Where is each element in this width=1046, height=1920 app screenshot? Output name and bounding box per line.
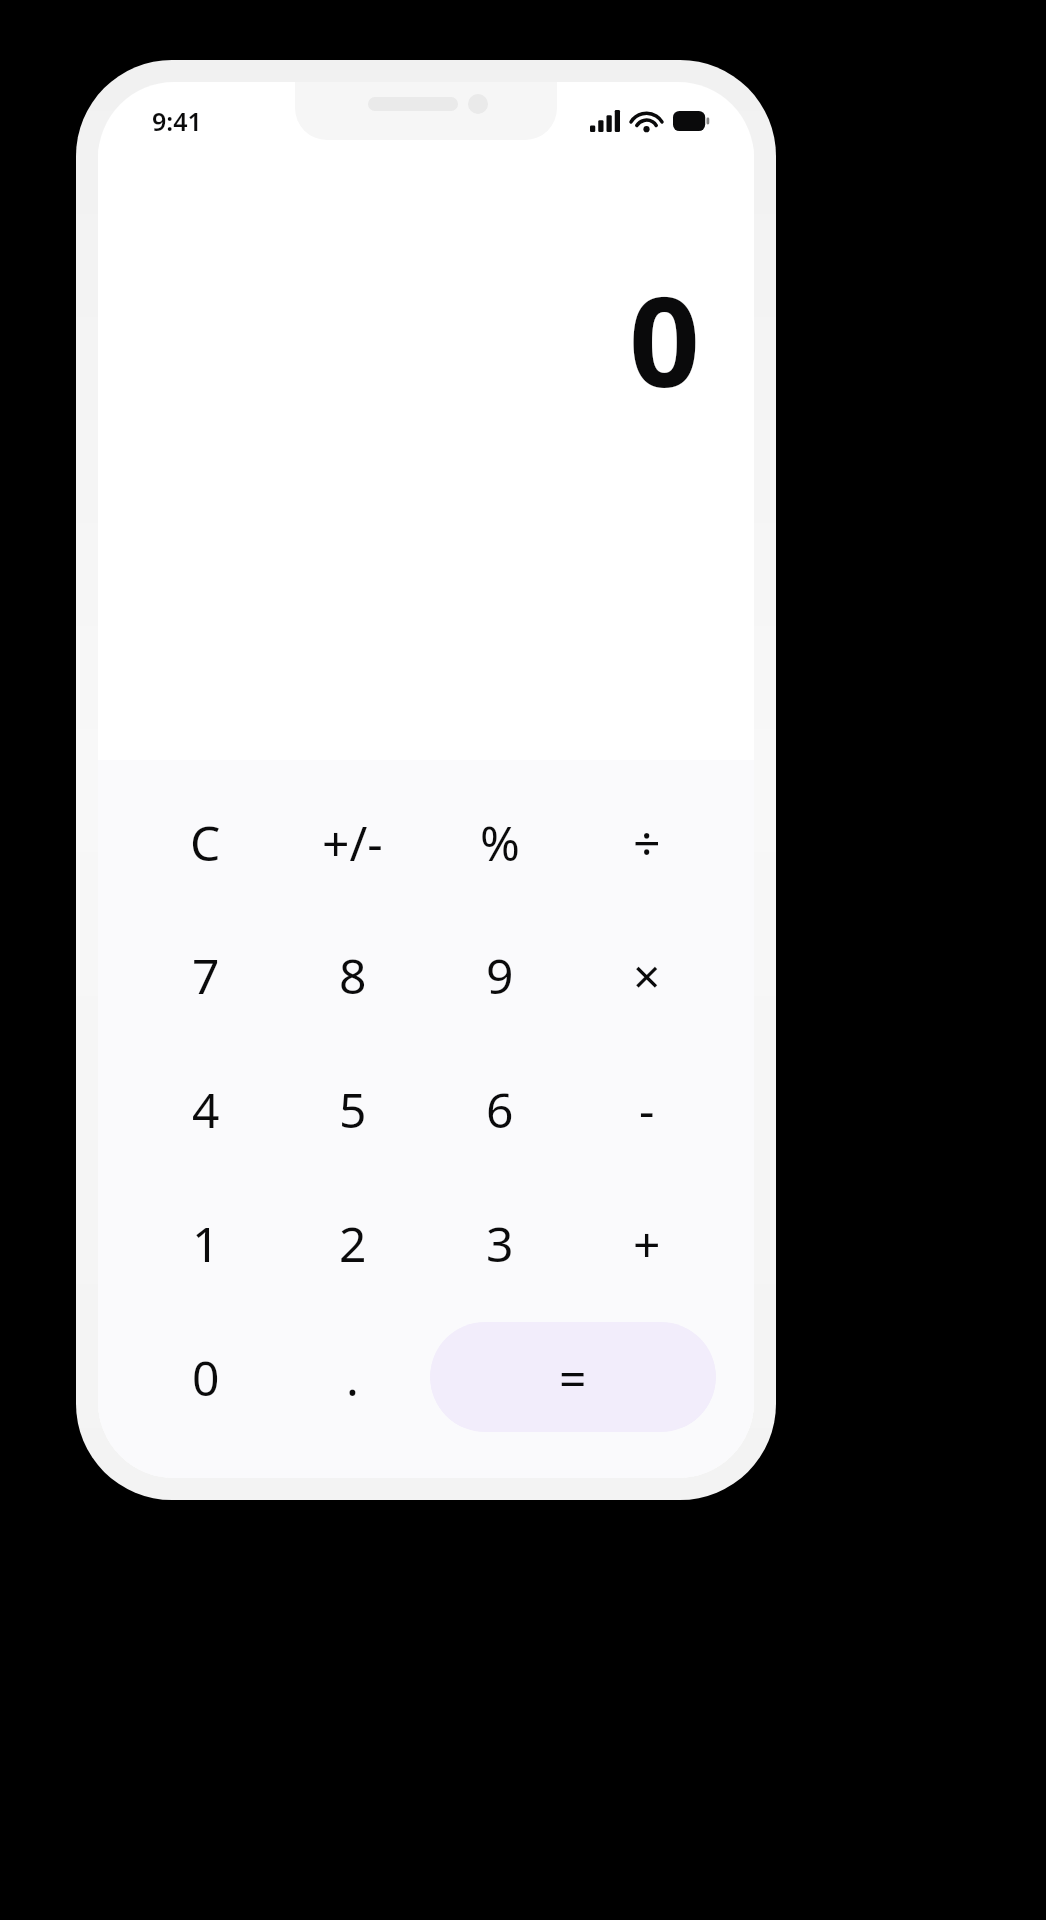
staticText: 5 — [339, 1077, 367, 1142]
staticText: 9 — [486, 943, 514, 1008]
button[interactable]: - — [573, 1042, 720, 1176]
staticText: 0 — [629, 254, 700, 423]
button[interactable]: 7 — [132, 909, 279, 1042]
button[interactable]: 2 — [279, 1176, 426, 1310]
staticText: +/- — [322, 810, 383, 875]
staticText: C — [190, 810, 221, 875]
other: Battery — [673, 111, 710, 131]
button[interactable]: 4 — [132, 1042, 279, 1176]
staticText: 1 — [192, 1211, 220, 1276]
staticText: 3 — [486, 1211, 514, 1276]
button[interactable]: % — [426, 776, 573, 909]
button[interactable]: 8 — [279, 909, 426, 1042]
staticText: × — [633, 943, 661, 1008]
staticText: 7 — [192, 943, 220, 1008]
staticText: 2 — [339, 1211, 367, 1276]
button[interactable]: = — [430, 1322, 716, 1432]
staticText: ÷ — [633, 810, 661, 875]
staticText: 4 — [192, 1077, 220, 1142]
button[interactable]: 5 — [279, 1042, 426, 1176]
staticText: = — [559, 1345, 587, 1410]
staticText: 9:41 — [152, 104, 202, 138]
button[interactable]: C — [132, 776, 279, 909]
staticText: + — [633, 1211, 661, 1276]
button[interactable]: ÷ — [573, 776, 720, 909]
button[interactable]: + — [573, 1176, 720, 1310]
staticText: % — [480, 810, 520, 875]
other: Wi-Fi — [632, 110, 661, 132]
staticText: 6 — [486, 1077, 514, 1142]
button[interactable]: 1 — [132, 1176, 279, 1310]
button[interactable]: 3 — [426, 1176, 573, 1310]
button[interactable]: 0 — [132, 1310, 279, 1444]
button[interactable]: . — [279, 1310, 426, 1444]
button[interactable]: × — [573, 909, 720, 1042]
button[interactable]: +/- — [279, 776, 426, 909]
staticText: 0 — [192, 1345, 220, 1410]
staticText: 8 — [339, 943, 367, 1008]
staticText: . — [346, 1345, 359, 1410]
staticText: - — [639, 1077, 655, 1142]
other: Cellular signal — [590, 110, 620, 132]
button[interactable]: 9 — [426, 909, 573, 1042]
button[interactable]: 6 — [426, 1042, 573, 1176]
